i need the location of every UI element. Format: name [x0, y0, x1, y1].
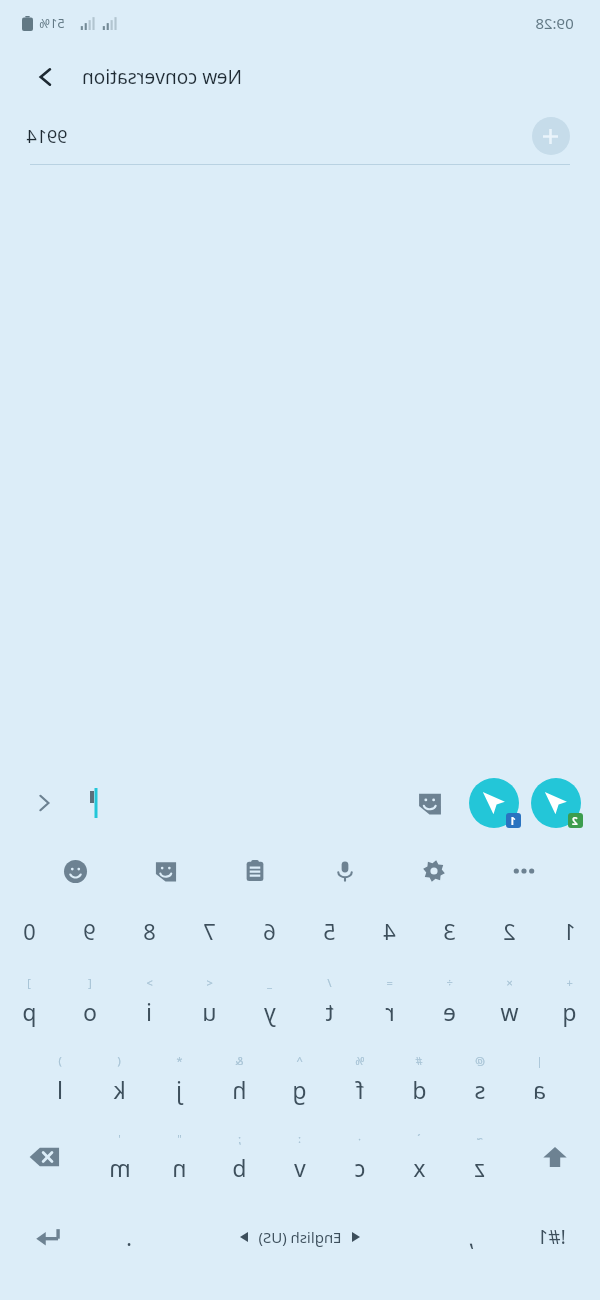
- staticText: x: [413, 1152, 426, 1183]
- staticText: /: [327, 975, 332, 990]
- staticText: 1: [510, 814, 516, 828]
- button[interactable]: ': [90, 1118, 150, 1196]
- button[interactable]: _: [240, 962, 300, 1040]
- button[interactable]: /: [300, 962, 360, 1040]
- button[interactable]: 9: [60, 900, 120, 962]
- button[interactable]: Enter: [0, 1196, 96, 1278]
- staticText: 09:28: [535, 13, 574, 33]
- button[interactable]: Backspace: [0, 1118, 90, 1196]
- button[interactable]: Send SIM 1: [466, 775, 522, 831]
- button[interactable]: ): [30, 1040, 90, 1118]
- staticText: 2: [572, 814, 578, 828]
- button[interactable]: Stickers: [143, 848, 189, 894]
- staticText: r: [385, 996, 395, 1027]
- staticText: o: [83, 996, 97, 1027]
- button[interactable]: 6: [240, 900, 300, 962]
- button[interactable]: Shift: [510, 1118, 600, 1196]
- button[interactable]: %: [330, 1040, 390, 1118]
- button[interactable]: 5: [300, 900, 360, 962]
- staticText: :: [298, 1131, 301, 1146]
- button[interactable]: ]: [0, 962, 60, 1040]
- staticText: &: [235, 1053, 244, 1068]
- staticText: `: [417, 1131, 421, 1146]
- button[interactable]: `: [390, 1118, 450, 1196]
- staticText: y: [264, 996, 276, 1027]
- staticText: =: [386, 975, 393, 990]
- button[interactable]: (: [90, 1040, 150, 1118]
- staticText: 8: [143, 916, 156, 946]
- button[interactable]: Stickers: [410, 783, 450, 823]
- staticText: l: [57, 1074, 63, 1105]
- staticText: d: [412, 1074, 427, 1105]
- staticText: u: [202, 996, 217, 1027]
- button[interactable]: Voice input: [322, 848, 368, 894]
- staticText: m: [109, 1152, 131, 1183]
- button[interactable]: More options: [501, 848, 547, 894]
- button[interactable]: Collapse: [24, 783, 64, 823]
- button[interactable]: 7: [180, 900, 240, 962]
- button[interactable]: 8: [120, 900, 180, 962]
- button[interactable]: !#1: [504, 1196, 600, 1278]
- button[interactable]: ": [150, 1118, 210, 1196]
- staticText: +: [566, 975, 573, 990]
- button[interactable]: :: [270, 1118, 330, 1196]
- staticText: 0: [23, 916, 36, 946]
- button[interactable]: ÷: [420, 962, 480, 1040]
- button[interactable]: 2: [480, 900, 540, 962]
- staticText: <: [206, 975, 213, 990]
- button[interactable]: *: [150, 1040, 210, 1118]
- button[interactable]: ×: [480, 962, 540, 1040]
- staticText: |: [536, 1053, 543, 1068]
- button[interactable]: ·: [330, 1118, 390, 1196]
- button[interactable]: #: [390, 1040, 450, 1118]
- staticText: i: [146, 996, 152, 1027]
- staticText: *: [176, 1053, 183, 1068]
- staticText: b: [232, 1152, 247, 1183]
- staticText: h: [232, 1074, 247, 1105]
- button[interactable]: ~: [450, 1118, 510, 1196]
- button[interactable]: Back: [24, 55, 68, 99]
- staticText: j: [176, 1074, 182, 1105]
- staticText: 7: [203, 916, 216, 946]
- button[interactable]: |: [510, 1040, 570, 1118]
- staticText: #: [415, 1053, 423, 1068]
- staticText: v: [294, 1152, 306, 1183]
- button[interactable]: =: [360, 962, 420, 1040]
- button[interactable]: Settings: [411, 848, 457, 894]
- staticText: .: [126, 1222, 132, 1252]
- button[interactable]: @: [450, 1040, 510, 1118]
- button[interactable]: Add recipient: [532, 117, 570, 155]
- staticText: 9914: [26, 124, 68, 149]
- button[interactable]: <: [180, 962, 240, 1040]
- button[interactable]: ,: [438, 1196, 504, 1278]
- button[interactable]: ^: [270, 1040, 330, 1118]
- staticText: ;: [238, 1131, 241, 1146]
- staticText: k: [113, 1074, 126, 1105]
- staticText: 4: [383, 916, 396, 946]
- staticText: (: [117, 1053, 121, 1068]
- button[interactable]: 1: [540, 900, 600, 962]
- button[interactable]: Emoji: [53, 848, 99, 894]
- button[interactable]: 4: [360, 900, 420, 962]
- button[interactable]: Send SIM 2: [528, 775, 584, 831]
- staticText: e: [443, 996, 456, 1027]
- staticText: ·: [358, 1131, 361, 1146]
- button[interactable]: 0: [0, 900, 60, 962]
- button[interactable]: +: [540, 962, 600, 1040]
- staticText: [: [88, 975, 92, 990]
- button[interactable]: &: [210, 1040, 270, 1118]
- staticText: ÷: [446, 975, 453, 990]
- button[interactable]: .: [96, 1196, 162, 1278]
- staticText: ×: [506, 975, 513, 990]
- staticText: @: [475, 1053, 485, 1068]
- button[interactable]: 3: [420, 900, 480, 962]
- staticText: >: [146, 975, 153, 990]
- staticText: English (US): [258, 1227, 342, 1247]
- button[interactable]: English (US): [162, 1196, 438, 1278]
- button[interactable]: Clipboard: [232, 848, 278, 894]
- staticText: t: [325, 996, 334, 1027]
- button[interactable]: >: [120, 962, 180, 1040]
- staticText: ): [58, 1053, 62, 1068]
- button[interactable]: [: [60, 962, 120, 1040]
- button[interactable]: ;: [210, 1118, 270, 1196]
